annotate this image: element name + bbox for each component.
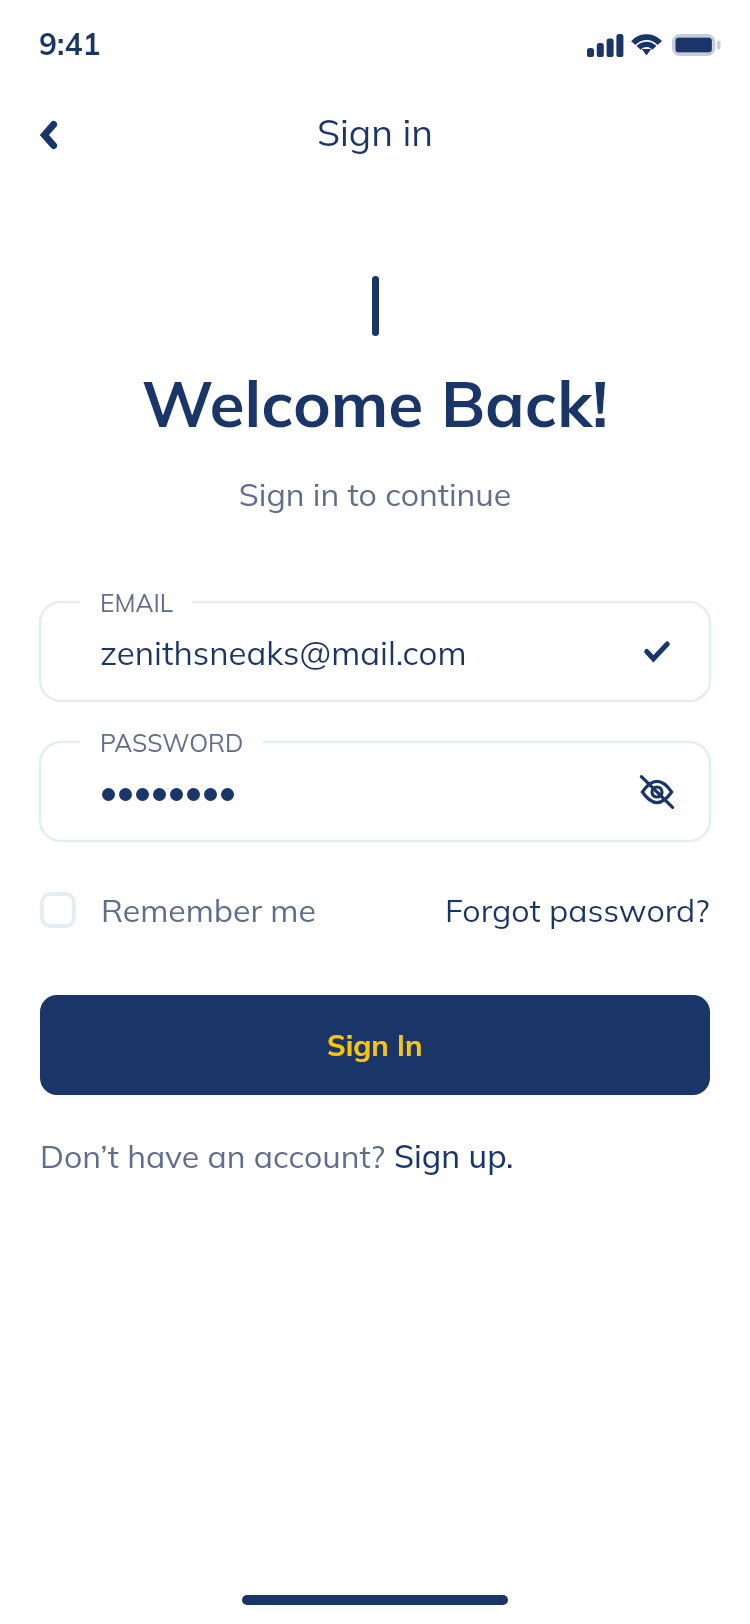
staticText: PASSWORD bbox=[100, 727, 244, 758]
button[interactable]: PASSWORD bbox=[40, 724, 710, 841]
button[interactable]: Sign In bbox=[40, 995, 710, 1095]
staticText: Welcome Back! bbox=[0, 363, 750, 443]
button[interactable]: EMAIL bbox=[40, 584, 710, 701]
staticText: 9:41 bbox=[39, 25, 101, 63]
staticText: zenithsneaks@mail.com bbox=[100, 632, 467, 673]
button[interactable]: Back bbox=[19, 105, 79, 165]
button[interactable]: Email valid bbox=[629, 624, 685, 680]
staticText: Sign in to continue bbox=[0, 474, 750, 514]
staticText: Remember me bbox=[101, 890, 316, 930]
staticText: Don’t have an account? bbox=[40, 1136, 394, 1176]
staticText: Sign In bbox=[327, 1027, 423, 1063]
button[interactable]: Sign up. bbox=[394, 1136, 514, 1176]
button[interactable]: Show password bbox=[629, 764, 685, 820]
button[interactable]: Remember me bbox=[40, 890, 316, 930]
staticText: Sign in bbox=[317, 109, 433, 155]
staticText: EMAIL bbox=[100, 587, 174, 618]
button[interactable]: Forgot password? bbox=[445, 890, 710, 930]
